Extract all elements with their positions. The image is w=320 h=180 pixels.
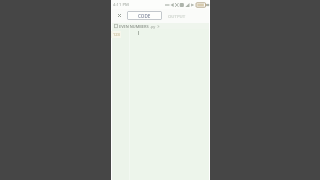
button[interactable]: EVEN NUMBERS: [112, 23, 209, 29]
button[interactable]: CODE: [127, 11, 162, 20]
staticText: CODE: [138, 13, 151, 19]
button[interactable]: Close: [115, 11, 124, 20]
staticText: 4:11 PM: [113, 2, 129, 8]
button[interactable]: OUTPUT: [162, 11, 192, 20]
staticText: .py: [150, 24, 156, 29]
staticText: 123: [113, 32, 120, 37]
staticText: OUTPUT: [168, 13, 186, 19]
staticText: EVEN NUMBERS: [119, 24, 149, 29]
